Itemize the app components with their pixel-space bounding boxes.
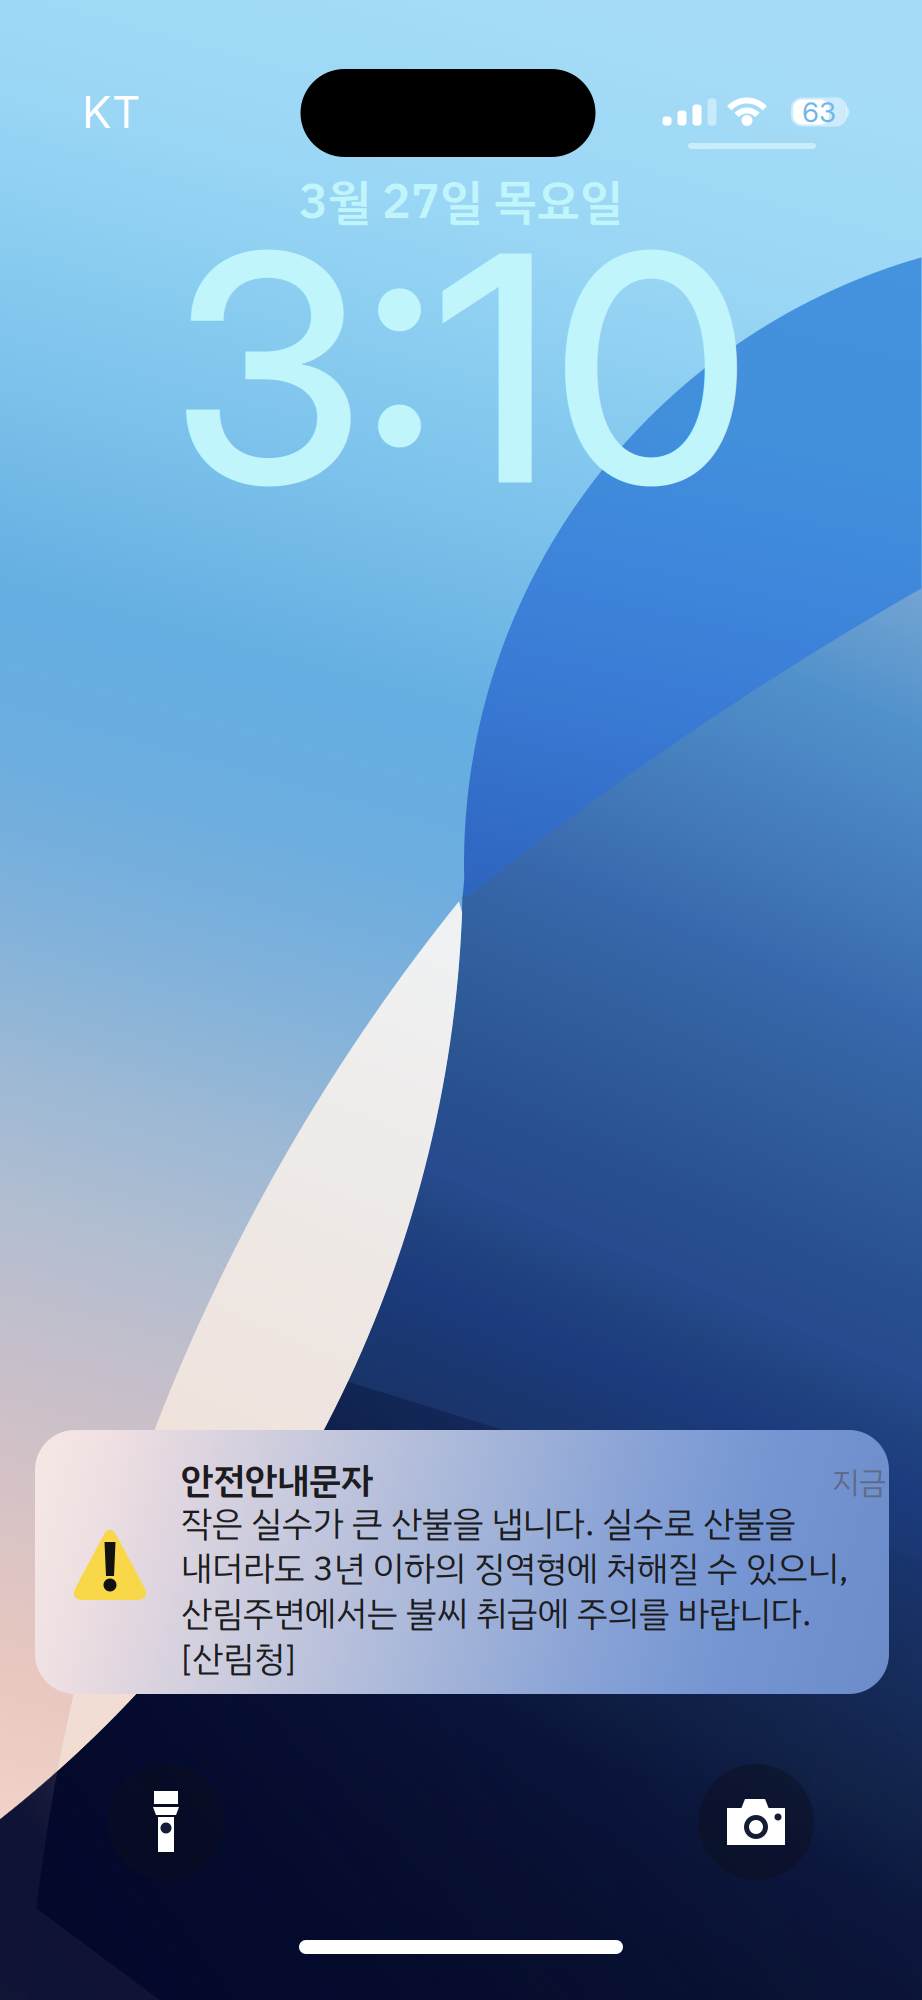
staticText: [산림청] bbox=[181, 1633, 296, 1685]
staticText: 63 bbox=[802, 95, 836, 129]
staticText: 3:10 bbox=[172, 178, 749, 558]
button[interactable]: Flashlight bbox=[108, 1764, 224, 1880]
staticText: 내더라도 3년 이하의 징역형에 처해질 수 있으니, bbox=[181, 1543, 848, 1595]
button[interactable]: 안전안내문자 bbox=[35, 1430, 889, 1694]
button[interactable]: Camera bbox=[698, 1764, 814, 1880]
staticText: 산림주변에서는 불씨 취급에 주의를 바랍니다. bbox=[181, 1588, 811, 1640]
staticText: 작은 실수가 큰 산불을 냅니다. 실수로 산불을 bbox=[181, 1498, 796, 1550]
staticText: KT bbox=[82, 85, 140, 139]
staticText: 안전안내문자 bbox=[181, 1454, 373, 1508]
staticText: 3월 27일 목요일 bbox=[299, 166, 623, 238]
staticText: 지금 bbox=[832, 1460, 886, 1506]
